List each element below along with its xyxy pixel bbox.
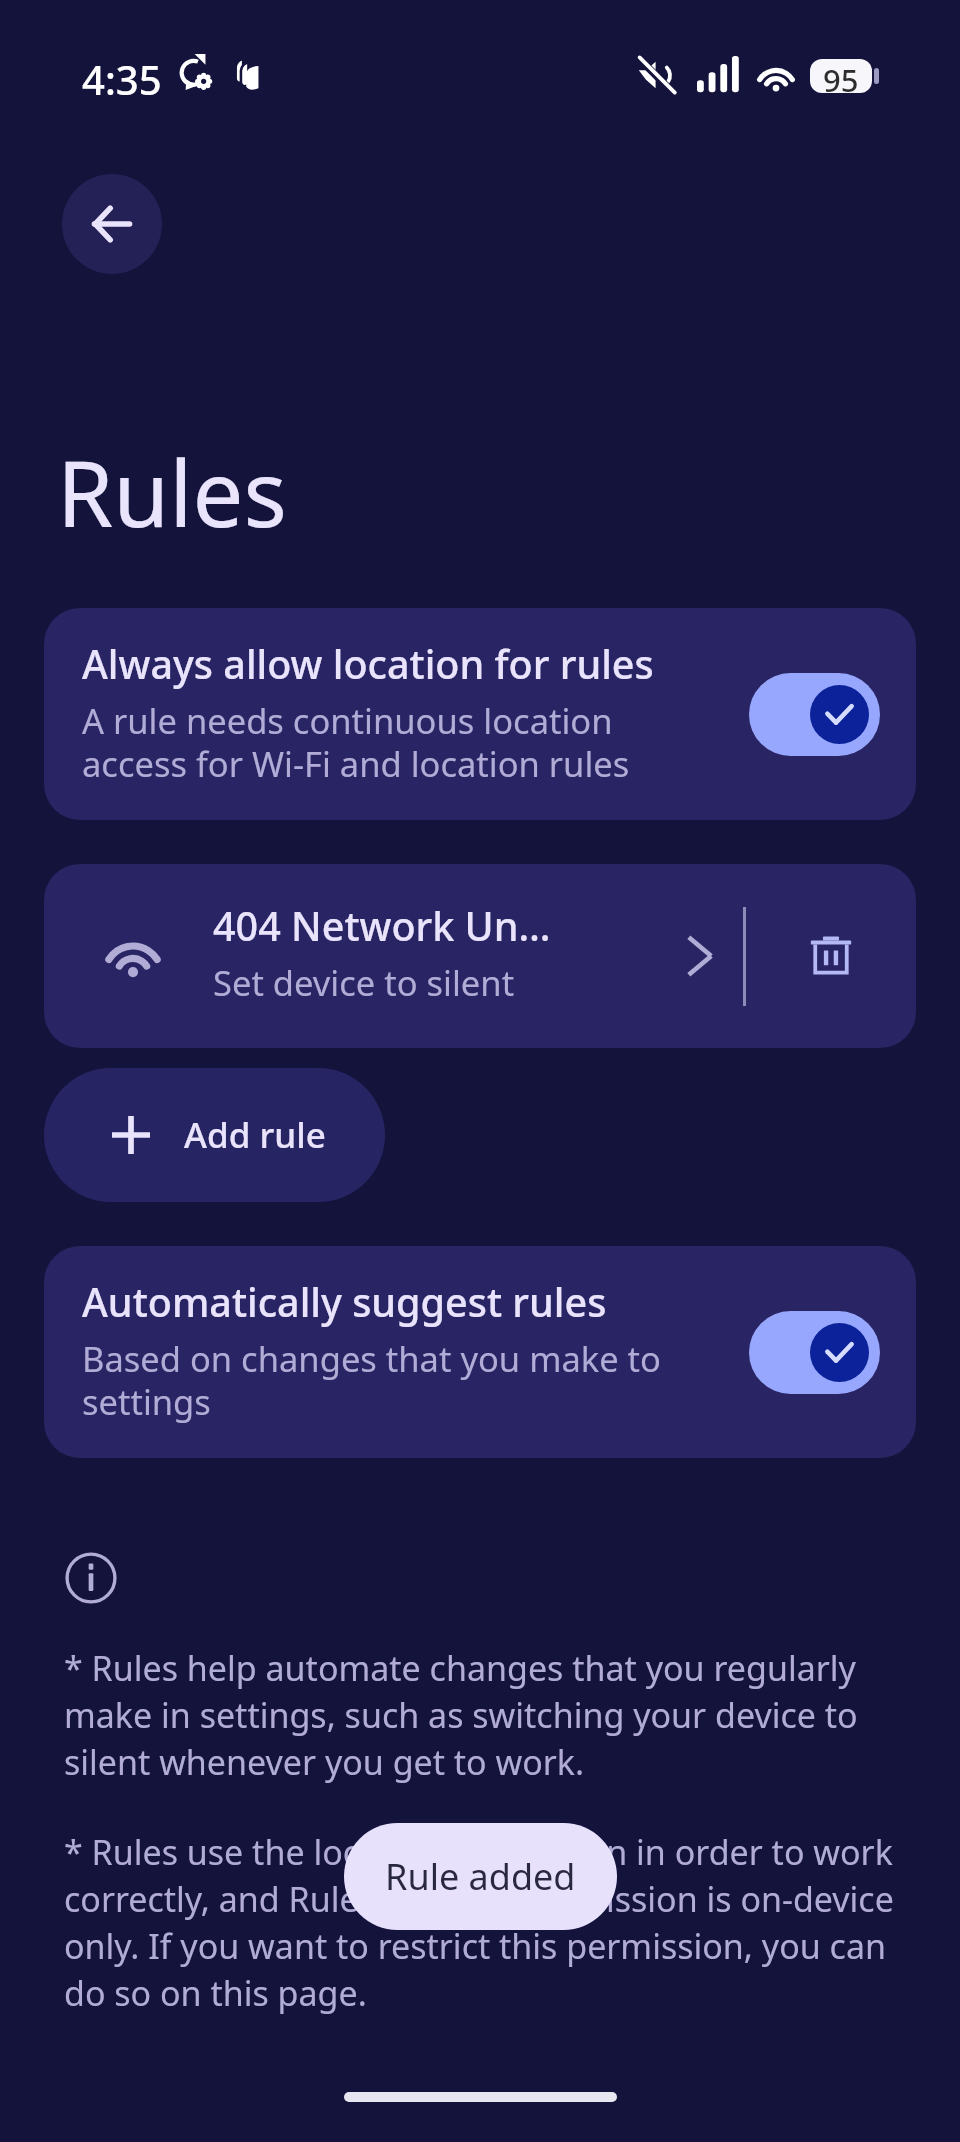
button[interactable]: Back (62, 174, 162, 274)
staticText: Rules (57, 430, 287, 553)
staticText: Rule added (385, 1852, 576, 1901)
staticText: Add rule (184, 1111, 326, 1159)
staticText: * Rules help automate changes that you r… (64, 1645, 858, 1785)
staticText: Always allow location for rules (82, 637, 654, 691)
button[interactable]: Automatically suggest rules (44, 1246, 916, 1458)
button[interactable]: Toggle (749, 1311, 880, 1394)
staticText: * Rules use the location permission in o… (64, 1829, 894, 2016)
staticText: Automatically suggest rules (82, 1275, 607, 1329)
button[interactable]: Delete rule (746, 864, 916, 1048)
staticText: 95 (823, 59, 859, 93)
button[interactable]: Toggle (749, 673, 880, 756)
button[interactable]: Add rule (44, 1068, 385, 1202)
button[interactable]: Rule added (344, 1823, 617, 1930)
staticText: 404 Network Un… (213, 899, 551, 953)
button[interactable]: Always allow location for rules (44, 608, 916, 820)
button[interactable]: 404 Network Un… (44, 864, 743, 1048)
staticText: Set device to silent (213, 959, 515, 1006)
staticText: A rule needs continuous location access … (82, 697, 630, 787)
staticText: 4:35 (82, 52, 162, 106)
staticText: Based on changes that you make to settin… (82, 1335, 661, 1425)
